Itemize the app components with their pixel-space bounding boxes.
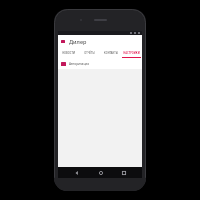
button[interactable]: НАСТРОЙКИ bbox=[121, 48, 142, 57]
button[interactable]: НОВОСТИ bbox=[58, 48, 79, 57]
button[interactable]: Home bbox=[96, 168, 105, 177]
button[interactable]: Item icon bbox=[58, 58, 142, 69]
staticText: Авторизация bbox=[69, 62, 90, 66]
staticText: ОТЧЁТЫ bbox=[84, 51, 95, 55]
staticText: КОНТАКТЫ bbox=[104, 51, 118, 55]
button[interactable]: ОТЧЁТЫ bbox=[79, 48, 100, 57]
staticText: Дилер bbox=[69, 38, 87, 45]
staticText: НАСТРОЙКИ bbox=[123, 51, 140, 55]
other: Item icon bbox=[61, 62, 66, 66]
button[interactable]: Back bbox=[72, 168, 81, 177]
button[interactable]: КОНТАКТЫ bbox=[100, 48, 121, 57]
button[interactable]: Logo bbox=[58, 35, 142, 48]
staticText: НОВОСТИ bbox=[62, 51, 75, 55]
button[interactable]: Recents bbox=[119, 168, 128, 177]
other: Logo bbox=[61, 40, 65, 43]
